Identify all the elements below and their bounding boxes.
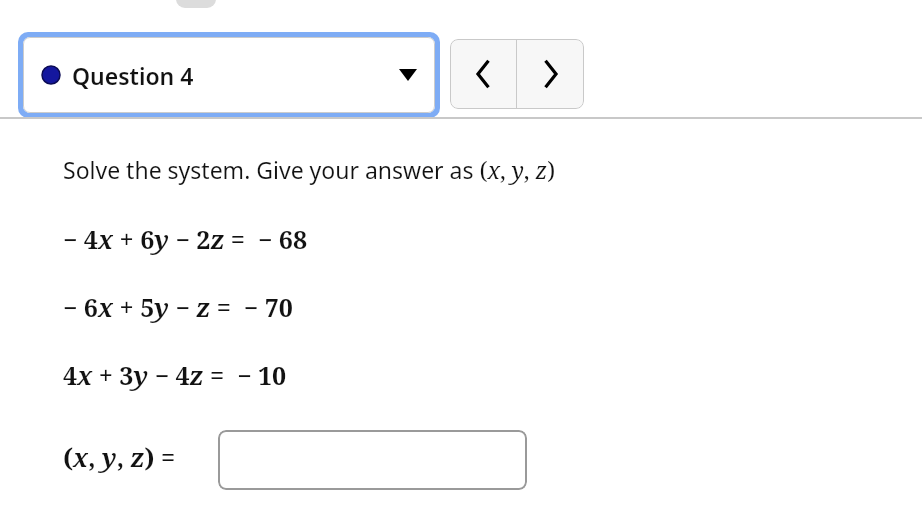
staticText: Question 4 [72,60,194,91]
staticText: 4x + 3y − 4z = − 10 [63,358,287,392]
staticText: − 6x + 5y − z = − 70 [63,290,293,324]
staticText: (x, y, z) = [63,440,176,474]
staticText: Solve the system. Give your answer as (x… [63,154,556,185]
button[interactable]: Previous question [450,39,516,109]
button[interactable]: Answer input field [218,430,527,490]
staticText: − 4x + 6y − 2z = − 68 [63,222,308,256]
button[interactable]: Question 4 [18,32,440,118]
button[interactable]: Next question [517,39,584,109]
